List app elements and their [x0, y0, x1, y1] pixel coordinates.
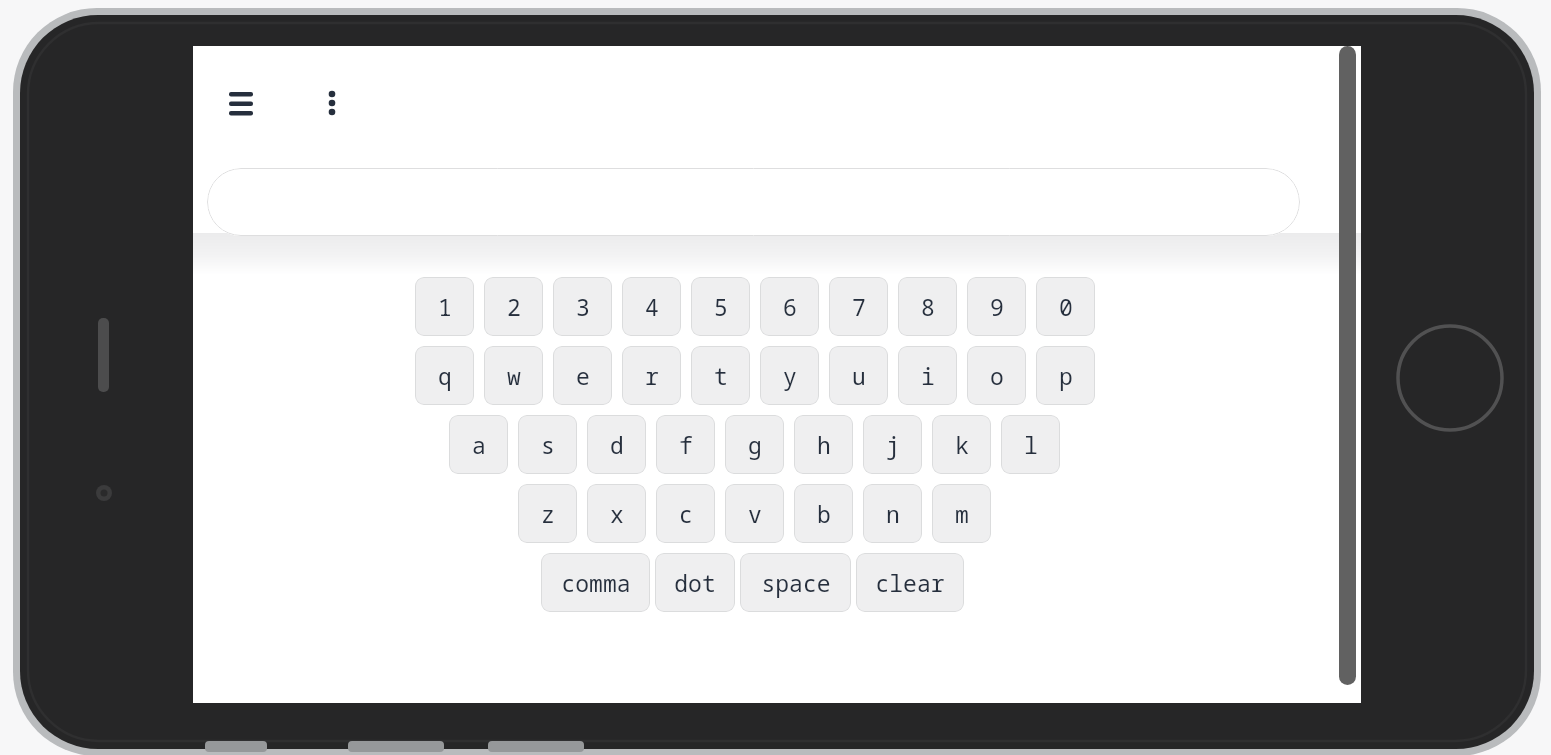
- button[interactable]: y: [760, 346, 819, 405]
- button[interactable]: s: [518, 415, 577, 474]
- button[interactable]: w: [484, 346, 543, 405]
- staticText: k: [955, 429, 969, 460]
- button[interactable]: b: [794, 484, 853, 543]
- staticText: 4: [645, 291, 659, 322]
- staticText: comma: [561, 567, 631, 598]
- button[interactable]: 3: [553, 277, 612, 336]
- button[interactable]: dot: [655, 553, 735, 612]
- button[interactable]: space: [740, 553, 851, 612]
- button[interactable]: h: [794, 415, 853, 474]
- staticText: y: [783, 360, 797, 391]
- button[interactable]: n: [863, 484, 922, 543]
- button[interactable]: comma: [541, 553, 650, 612]
- button[interactable]: j: [863, 415, 922, 474]
- button[interactable]: 2: [484, 277, 543, 336]
- staticText: dot: [674, 567, 716, 598]
- staticText: 1: [438, 291, 452, 322]
- button[interactable]: More options: [310, 82, 354, 124]
- button[interactable]: f: [656, 415, 715, 474]
- staticText: 2: [507, 291, 521, 322]
- button[interactable]: t: [691, 346, 750, 405]
- button[interactable]: p: [1036, 346, 1095, 405]
- button[interactable]: o: [967, 346, 1026, 405]
- staticText: clear: [875, 567, 945, 598]
- staticText: f: [679, 429, 693, 460]
- button[interactable]: i: [898, 346, 957, 405]
- staticText: 9: [990, 291, 1004, 322]
- staticText: m: [955, 498, 969, 529]
- staticText: z: [541, 498, 555, 529]
- staticText: g: [748, 429, 762, 460]
- staticText: t: [714, 360, 728, 391]
- button[interactable]: 6: [760, 277, 819, 336]
- staticText: space: [761, 567, 831, 598]
- staticText: p: [1059, 360, 1073, 391]
- staticText: 5: [714, 291, 728, 322]
- button[interactable]: g: [725, 415, 784, 474]
- staticText: 7: [852, 291, 866, 322]
- button[interactable]: 8: [898, 277, 957, 336]
- staticText: b: [817, 498, 831, 529]
- button[interactable]: 1: [415, 277, 474, 336]
- staticText: j: [886, 429, 900, 460]
- staticText: i: [921, 360, 935, 391]
- button[interactable]: r: [622, 346, 681, 405]
- staticText: 8: [921, 291, 935, 322]
- staticText: l: [1024, 429, 1038, 460]
- button[interactable]: a: [449, 415, 508, 474]
- staticText: q: [438, 360, 452, 391]
- staticText: c: [679, 498, 693, 529]
- button[interactable]: d: [587, 415, 646, 474]
- staticText: n: [886, 498, 900, 529]
- button[interactable]: Menu: [219, 82, 263, 124]
- staticText: e: [576, 360, 590, 391]
- button[interactable]: e: [553, 346, 612, 405]
- staticText: u: [852, 360, 866, 391]
- staticText: x: [610, 498, 624, 529]
- staticText: w: [507, 360, 521, 391]
- staticText: a: [472, 429, 486, 460]
- staticText: 6: [783, 291, 797, 322]
- staticText: h: [817, 429, 831, 460]
- staticText: v: [748, 498, 762, 529]
- staticText: r: [645, 360, 659, 391]
- button[interactable]: x: [587, 484, 646, 543]
- staticText: 0: [1059, 291, 1073, 322]
- button[interactable]: 4: [622, 277, 681, 336]
- button[interactable]: 7: [829, 277, 888, 336]
- button[interactable]: u: [829, 346, 888, 405]
- button[interactable]: l: [1001, 415, 1060, 474]
- staticText: o: [990, 360, 1004, 391]
- button[interactable]: v: [725, 484, 784, 543]
- button[interactable]: c: [656, 484, 715, 543]
- button[interactable]: clear: [856, 553, 964, 612]
- button[interactable]: 5: [691, 277, 750, 336]
- button[interactable]: 0: [1036, 277, 1095, 336]
- button[interactable]: q: [415, 346, 474, 405]
- button[interactable]: m: [932, 484, 991, 543]
- button[interactable]: Text input field: [207, 168, 1300, 236]
- staticText: 3: [576, 291, 590, 322]
- button[interactable]: z: [518, 484, 577, 543]
- staticText: d: [610, 429, 624, 460]
- button[interactable]: k: [932, 415, 991, 474]
- staticText: s: [541, 429, 555, 460]
- button[interactable]: 9: [967, 277, 1026, 336]
